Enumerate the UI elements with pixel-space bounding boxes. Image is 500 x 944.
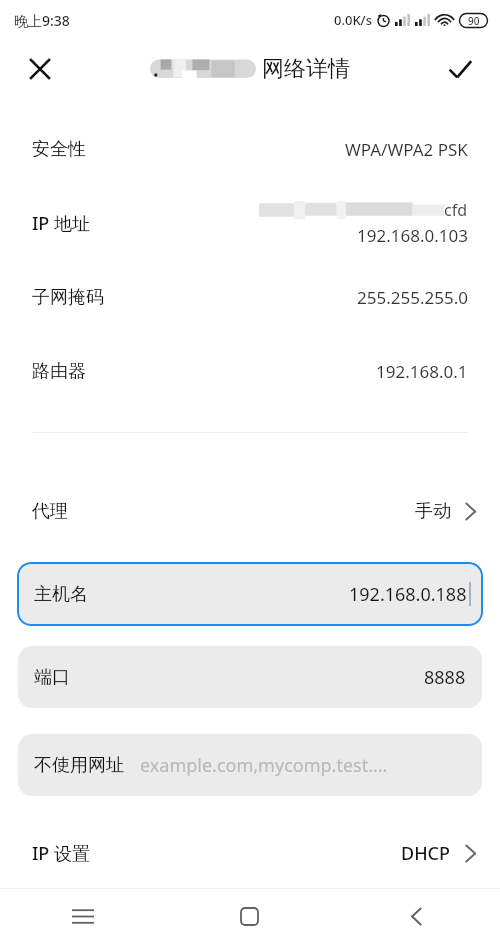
button[interactable]: Confirm: [436, 45, 484, 93]
button[interactable]: 安全性: [0, 112, 500, 186]
button[interactable]: Back: [333, 889, 500, 944]
button[interactable]: 主机名: [17, 562, 483, 626]
staticText: IP 设置: [32, 841, 91, 866]
button[interactable]: IP 地址: [0, 186, 500, 260]
staticText: 手动: [415, 500, 451, 523]
staticText: 主机名: [34, 583, 88, 606]
staticText: 8888: [424, 665, 466, 690]
staticText: example.com,mycomp.test....: [140, 753, 388, 778]
button[interactable]: Home: [166, 889, 333, 944]
staticText: cfd: [444, 199, 468, 221]
button[interactable]: 端口: [18, 646, 482, 708]
staticText: 255.255.255.0: [357, 286, 468, 309]
staticText: IP 地址: [32, 211, 91, 236]
staticText: 路由器: [32, 360, 86, 383]
staticText: WPA/WPA2 PSK: [345, 138, 468, 161]
staticText: 0.0K/s: [334, 11, 372, 29]
staticText: 不使用网址: [34, 754, 124, 777]
button[interactable]: 子网掩码: [0, 260, 500, 334]
button[interactable]: 不使用网址: [18, 734, 482, 796]
staticText: 192.168.0.1: [376, 360, 468, 383]
button[interactable]: Recents: [0, 889, 166, 944]
staticText: DHCP: [401, 841, 451, 866]
staticText: 端口: [34, 666, 70, 689]
staticText: 网络详情: [262, 55, 350, 83]
button[interactable]: 路由器: [0, 334, 500, 408]
button[interactable]: IP 设置: [0, 822, 500, 884]
staticText: 192.168.0.188: [349, 582, 467, 607]
staticText: 安全性: [32, 138, 86, 161]
staticText: 晚上9:38: [14, 11, 70, 30]
button[interactable]: Close: [16, 45, 64, 93]
staticText: 90: [468, 14, 480, 28]
staticText: 子网掩码: [32, 286, 104, 309]
staticText: 代理: [32, 500, 68, 523]
staticText: 192.168.0.103: [357, 224, 468, 247]
button[interactable]: 代理: [0, 480, 500, 542]
